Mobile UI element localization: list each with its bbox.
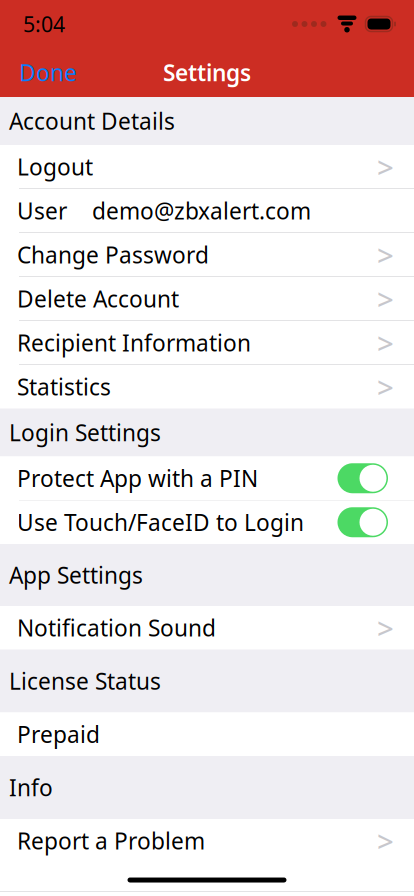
staticText: > [377,367,394,406]
button[interactable]: Notification Sound [0,606,414,649]
button[interactable]: Done [0,47,89,97]
staticText: Account Details [9,106,175,136]
staticText: License Status [9,666,161,696]
staticText: > [377,608,394,647]
staticText: Settings [163,57,251,87]
staticText: App Settings [9,560,143,590]
staticText: Protect App with a PIN [17,463,258,493]
button[interactable]: Protect App with a PIN [0,456,414,500]
staticText: Done [19,57,77,87]
staticText: demo@zbxalert.com [92,196,311,226]
staticText: Info [9,772,53,802]
staticText: 5:04 [23,10,65,38]
staticText: > [377,279,394,318]
button[interactable]: Logout [0,145,414,188]
staticText: Statistics [17,372,111,402]
staticText: Recipient Information [17,328,251,358]
staticText: > [377,821,394,860]
staticText: User [17,196,67,226]
staticText: > [377,235,394,274]
staticText: Prepaid [17,719,100,749]
button[interactable]: Statistics [0,365,414,408]
staticText: Use Touch/FaceID to Login [17,507,304,537]
staticText: Report a Problem [17,826,205,856]
staticText: Logout [17,152,93,182]
button[interactable]: Change Password [0,233,414,276]
staticText: Login Settings [9,417,161,447]
button[interactable]: Use Touch/FaceID to Login [0,500,414,544]
staticText: > [377,323,394,362]
button[interactable]: Delete Account [0,277,414,320]
button[interactable]: Report a Problem [0,819,414,862]
staticText: Notification Sound [17,613,216,643]
staticText: Change Password [17,240,209,270]
staticText: Delete Account [17,284,179,314]
button[interactable]: Recipient Information [0,321,414,364]
staticText: > [377,147,394,186]
